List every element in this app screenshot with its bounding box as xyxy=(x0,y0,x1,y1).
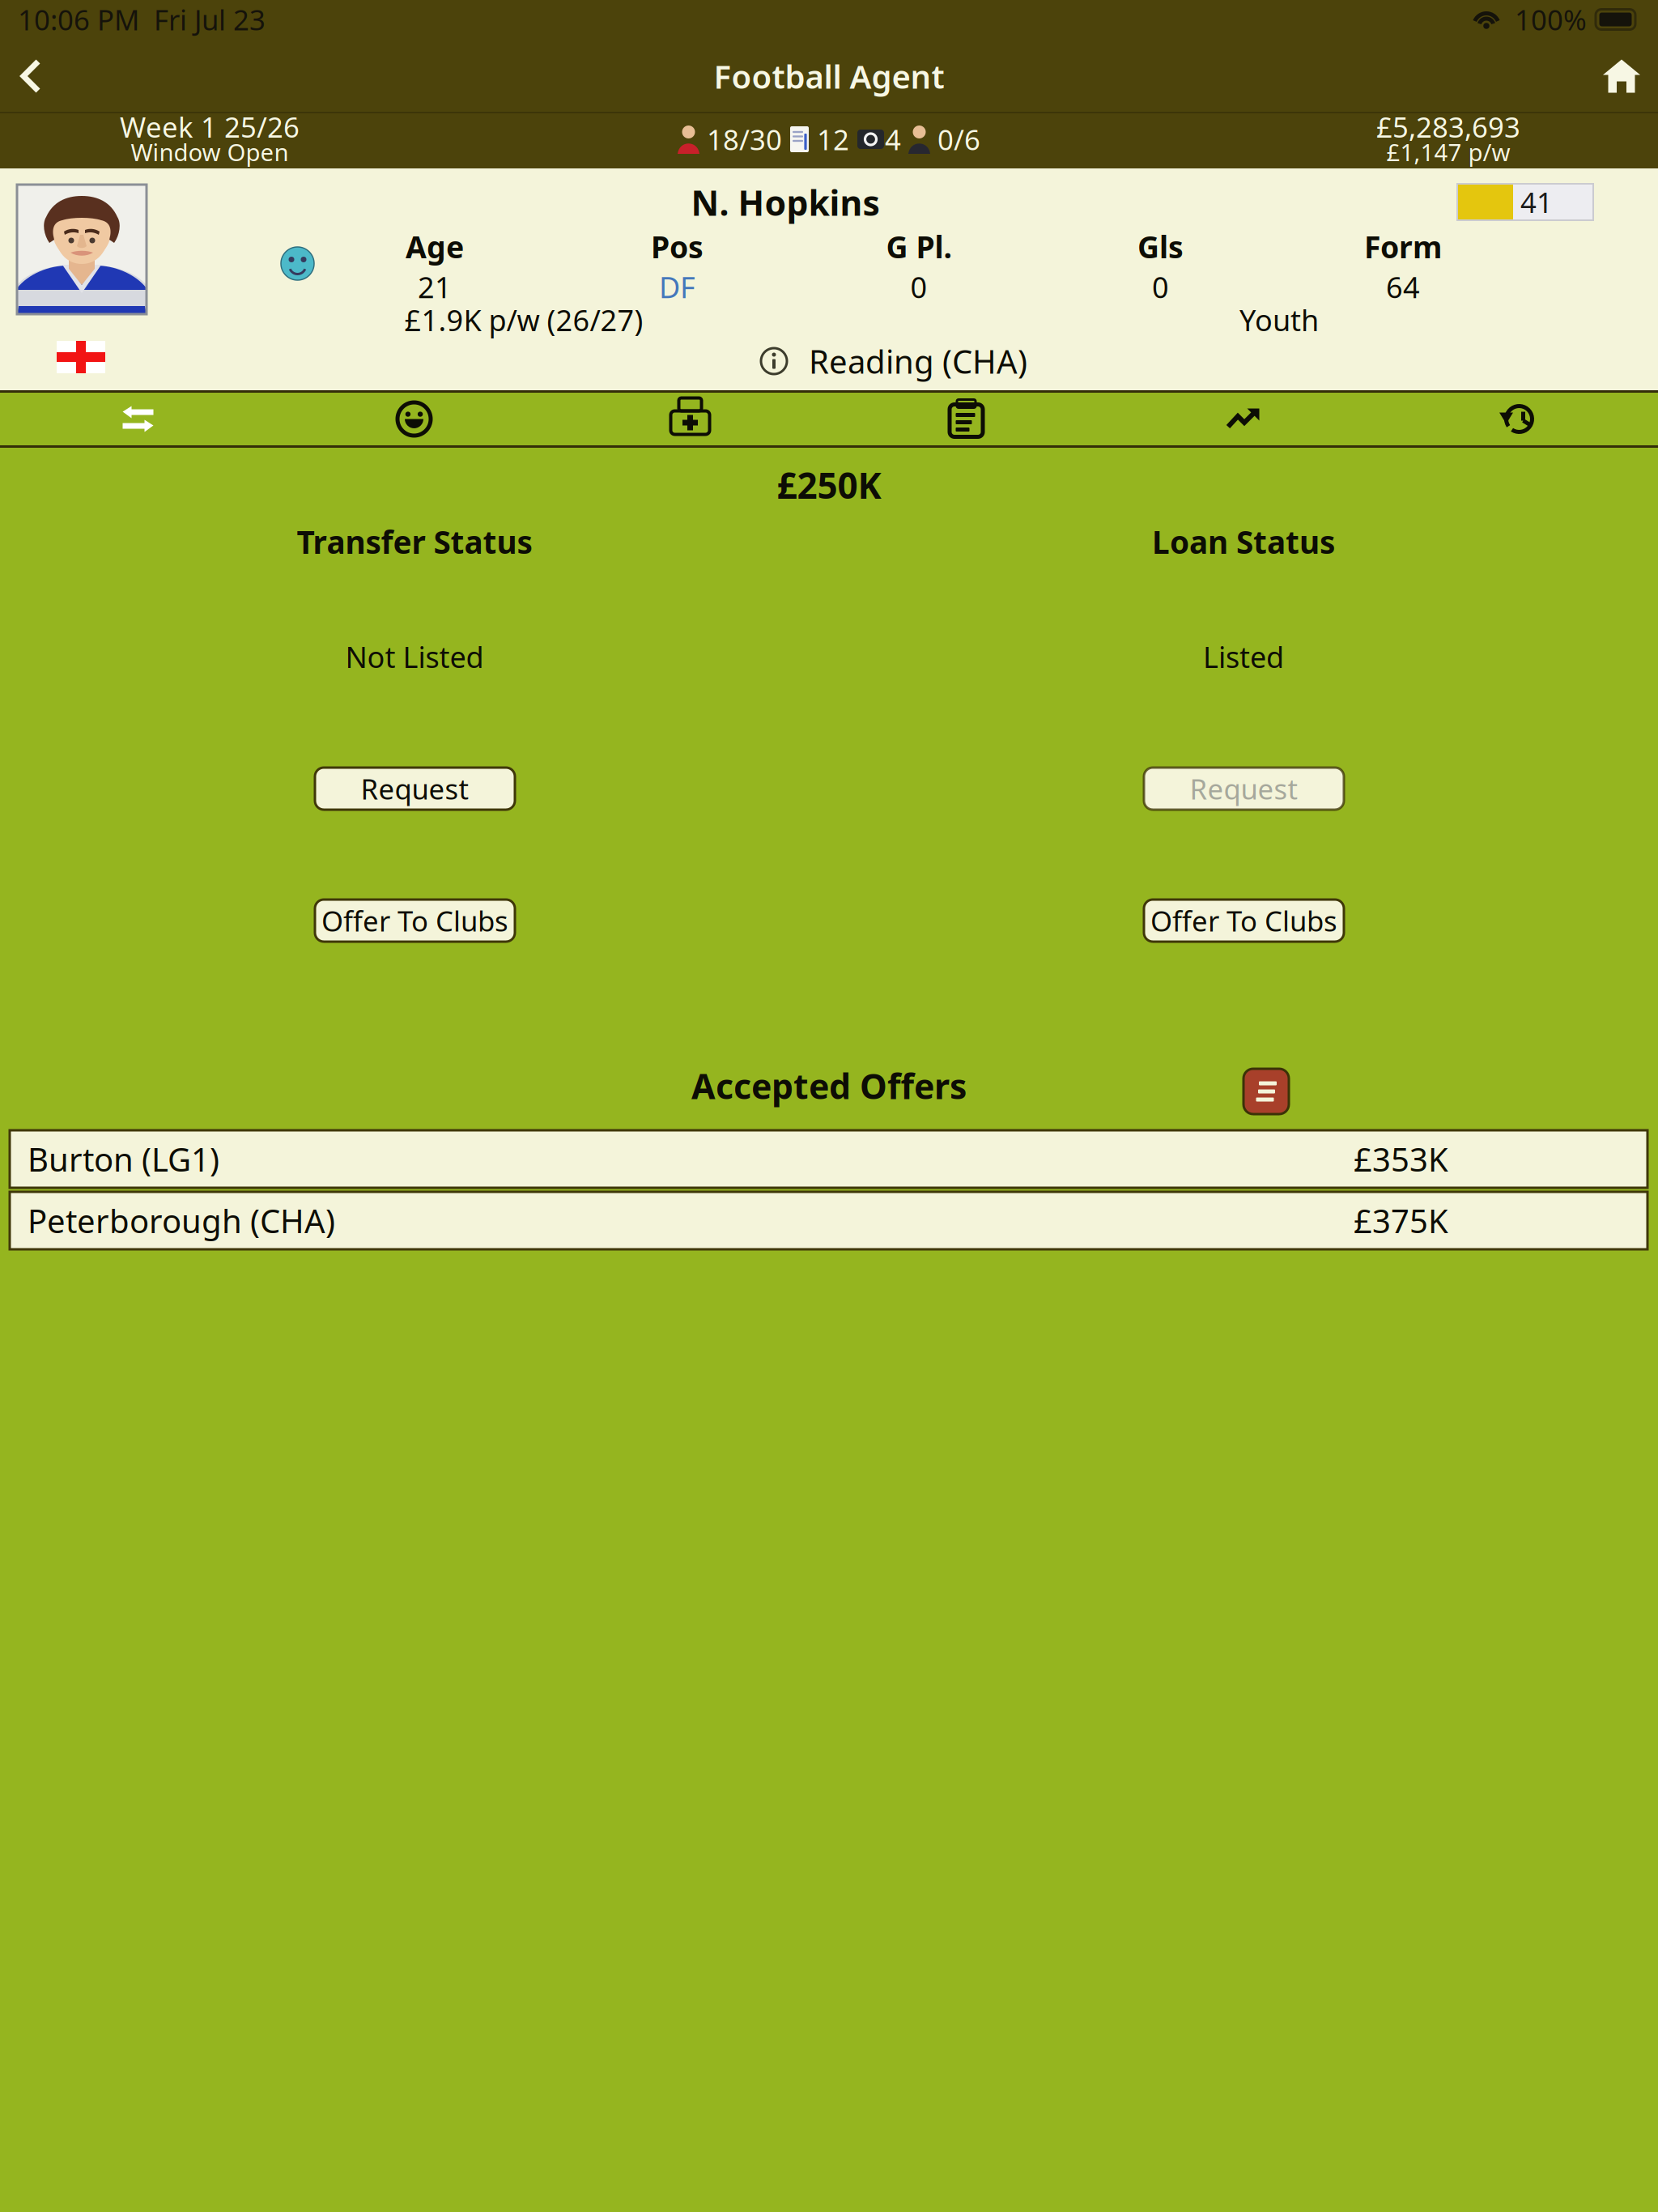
staticText: £1,147 p/w xyxy=(1386,136,1510,168)
button[interactable]: Peterborough (CHA) xyxy=(10,1192,1647,1249)
button[interactable]: Home xyxy=(1585,40,1658,112)
staticText: £353K xyxy=(1354,1137,1448,1180)
button[interactable]: Scout report xyxy=(828,390,1104,448)
staticText: Peterborough (CHA) xyxy=(28,1199,335,1242)
staticText: 64 xyxy=(1386,268,1420,306)
staticText: 0/6 xyxy=(930,121,980,158)
staticText: 100% xyxy=(1500,1,1594,38)
staticText: Offer To Clubs xyxy=(1150,902,1337,939)
staticText: 0 xyxy=(1152,268,1169,306)
staticText: Transfer Status xyxy=(297,521,532,562)
button[interactable]: Offer To Clubs xyxy=(315,900,515,942)
staticText: Window Open xyxy=(131,136,289,168)
staticText: Week 1 25/26 xyxy=(120,108,300,145)
staticText: 41 xyxy=(1520,183,1553,221)
staticText: 0 xyxy=(910,268,927,306)
button[interactable]: Request xyxy=(315,768,515,810)
staticText: 10:06 PM xyxy=(18,1,139,38)
button[interactable]: Morale xyxy=(276,390,552,448)
staticText: Accepted Offers xyxy=(691,1063,967,1109)
staticText: 18/30 xyxy=(699,121,789,158)
staticText: 21 xyxy=(418,268,452,306)
staticText: Form xyxy=(1364,227,1442,267)
staticText: Loan Status xyxy=(1152,521,1335,562)
button[interactable]: Transfers xyxy=(0,390,276,448)
button[interactable]: Request xyxy=(1144,768,1344,810)
staticText: £5,283,693 xyxy=(1376,108,1520,145)
button[interactable]: Progress xyxy=(1104,390,1380,448)
staticText: Burton (LG1) xyxy=(28,1137,219,1180)
staticText: Pos xyxy=(651,227,704,267)
button[interactable]: Offer To Clubs xyxy=(1144,900,1344,942)
staticText: N. Hopkins xyxy=(691,180,880,225)
button[interactable]: Burton (LG1) xyxy=(10,1130,1647,1188)
staticText: 12 xyxy=(810,121,857,158)
staticText: Reading (CHA) xyxy=(809,340,1027,383)
staticText: Request xyxy=(361,770,469,807)
staticText: Request xyxy=(1190,770,1298,807)
staticText: Listed xyxy=(1203,637,1284,676)
staticText: Football Agent xyxy=(714,55,944,98)
staticText: £1.9K p/w (26/27) xyxy=(404,300,643,339)
button[interactable]: Sort offers xyxy=(1243,1069,1289,1114)
staticText: £250K xyxy=(777,461,881,509)
staticText: Gls xyxy=(1137,227,1184,267)
staticText: Not Listed xyxy=(345,637,484,676)
staticText: G Pl. xyxy=(886,227,952,267)
button[interactable]: Back xyxy=(2,40,60,112)
button[interactable]: Fitness xyxy=(552,390,828,448)
button[interactable]: History xyxy=(1380,390,1658,448)
staticText: 4 xyxy=(885,121,908,158)
staticText: DF xyxy=(659,268,695,306)
staticText: Fri Jul 23 xyxy=(154,1,266,38)
staticText: Offer To Clubs xyxy=(321,902,508,939)
staticText: £375K xyxy=(1354,1199,1448,1242)
staticText: Youth xyxy=(1239,300,1319,339)
staticText: Age xyxy=(406,227,464,267)
